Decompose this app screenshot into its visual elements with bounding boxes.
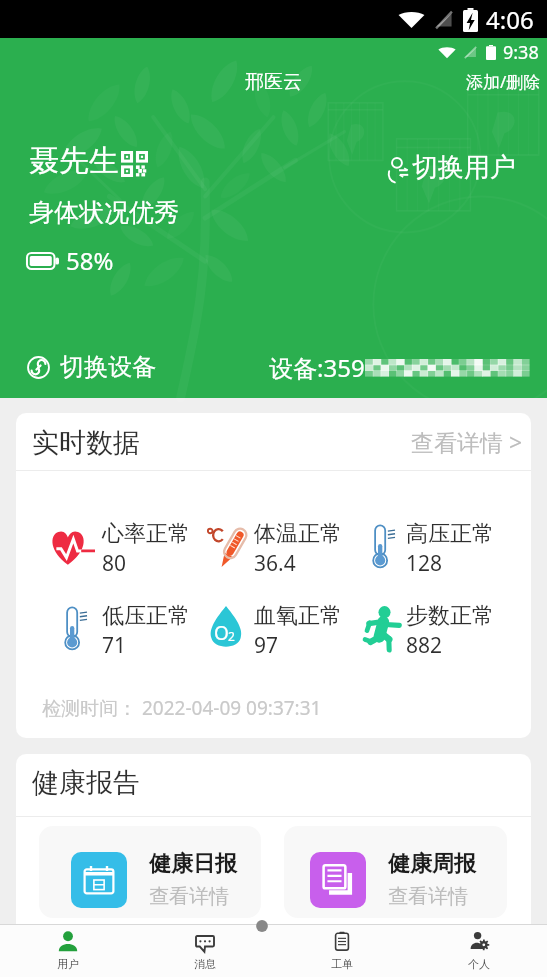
staticText: 聂先生 xyxy=(29,142,119,180)
button[interactable]: 切换用户 xyxy=(381,146,523,189)
staticText: 用户 xyxy=(57,957,79,971)
staticText: 71 xyxy=(102,631,127,660)
staticText: 4:06 xyxy=(486,3,534,36)
staticText: 体温正常 xyxy=(254,520,342,548)
staticText: O xyxy=(214,620,229,646)
staticText: 882 xyxy=(406,631,443,660)
staticText: 80 xyxy=(102,549,127,578)
staticText: 9:38 xyxy=(503,40,539,65)
button[interactable]: 切换设备 xyxy=(21,347,162,387)
staticText: 97 xyxy=(254,631,279,660)
staticText: 36.4 xyxy=(254,549,296,578)
button[interactable]: 查看详情 > xyxy=(403,418,531,465)
button[interactable]: 用户 xyxy=(0,925,136,977)
staticText: 检测时间： 2022-04-09 09:37:31 xyxy=(42,695,322,721)
staticText: 设备:359 xyxy=(269,351,365,384)
button[interactable] xyxy=(201,598,351,658)
staticText: 健康周报 xyxy=(388,850,476,878)
staticText: 高压正常 xyxy=(406,520,494,548)
staticText: 查看详情 xyxy=(388,884,468,909)
staticText: 查看详情 xyxy=(149,884,229,909)
staticText: 个人 xyxy=(468,957,490,971)
staticText: 添加/删除 xyxy=(466,70,541,93)
staticText: 低压正常 xyxy=(102,602,190,630)
staticText: 身体状况优秀 xyxy=(29,197,179,228)
button[interactable] xyxy=(357,598,507,658)
staticText: 工单 xyxy=(331,957,353,971)
staticText: 切换用户 xyxy=(412,151,516,184)
staticText: 查看详情 > xyxy=(411,426,523,457)
staticText: 健康日报 xyxy=(149,850,237,878)
button[interactable]: 健康日报 xyxy=(39,826,261,918)
button[interactable]: 个人 xyxy=(410,925,547,977)
button[interactable]: 工单 xyxy=(273,925,410,977)
staticText: 实时数据 xyxy=(32,426,140,460)
button[interactable] xyxy=(56,598,206,658)
staticText: 2 xyxy=(228,628,235,644)
button[interactable] xyxy=(198,516,348,576)
button[interactable] xyxy=(364,516,514,576)
staticText: 健康报告 xyxy=(32,766,140,800)
staticText: 58% xyxy=(66,244,114,277)
button[interactable]: 健康周报 xyxy=(284,826,507,918)
staticText: 邢医云 xyxy=(245,70,302,94)
staticText: 切换设备 xyxy=(60,352,156,382)
staticText: 128 xyxy=(406,549,443,578)
staticText: 心率正常 xyxy=(102,520,190,548)
button[interactable]: 消息 xyxy=(136,925,273,977)
staticText: 步数正常 xyxy=(406,602,494,630)
staticText: 消息 xyxy=(194,957,216,971)
button[interactable] xyxy=(41,516,191,576)
staticText: 血氧正常 xyxy=(254,602,342,630)
button[interactable]: 添加/删除 xyxy=(460,62,547,101)
